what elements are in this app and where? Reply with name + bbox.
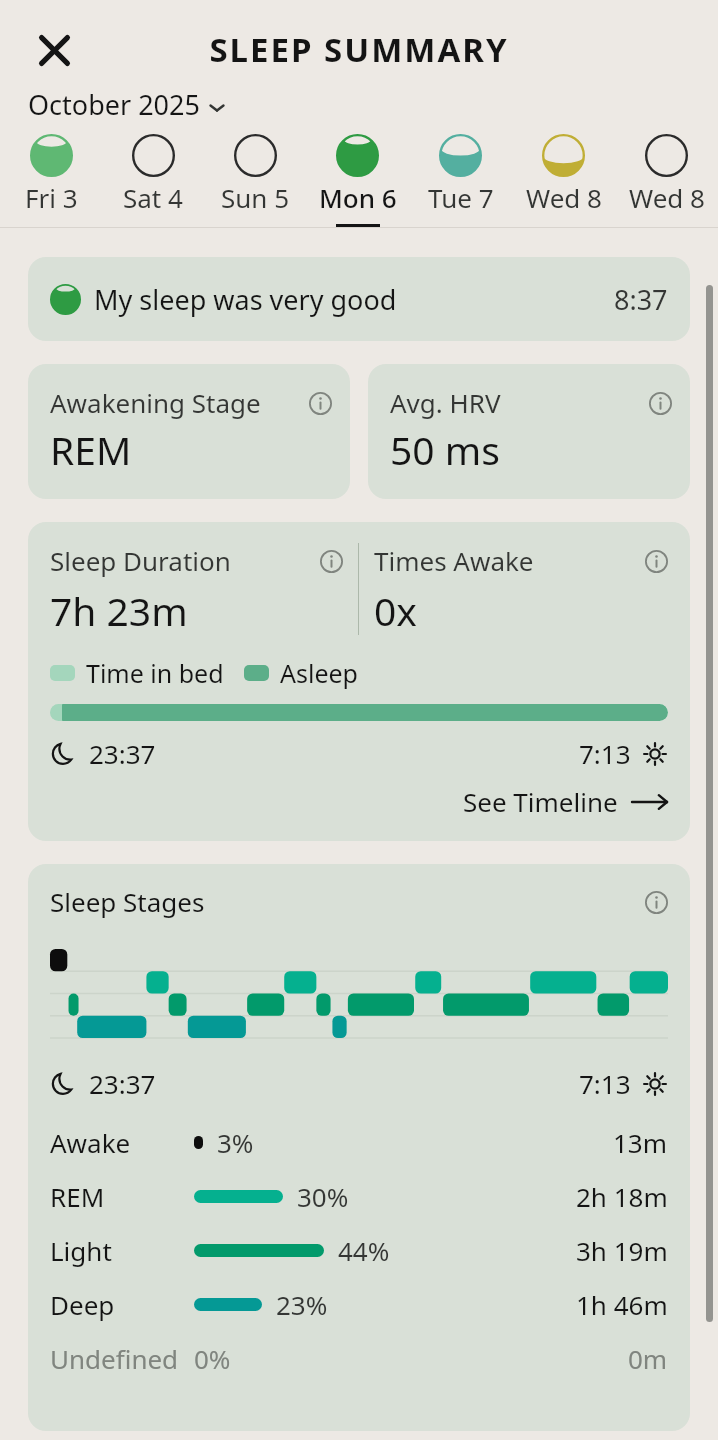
staticText: Wed 8	[629, 180, 705, 215]
staticText: Awakening Stage	[50, 385, 261, 420]
button[interactable]: Info	[644, 890, 668, 914]
button[interactable]: Tue 7	[409, 134, 512, 228]
staticText: REM	[50, 1179, 105, 1214]
staticText: Tue 7	[428, 180, 494, 215]
button[interactable]: See Timeline	[50, 784, 668, 819]
staticText: Undefined	[50, 1341, 179, 1376]
button[interactable]: Info	[308, 391, 332, 415]
button[interactable]: Mon 6	[306, 134, 409, 228]
staticText: 7h 23m	[50, 584, 188, 637]
staticText: 7:13	[579, 1066, 631, 1101]
staticText: 0%	[194, 1341, 231, 1376]
staticText: Fri 3	[25, 180, 78, 215]
staticText: 2h 18m	[576, 1179, 668, 1214]
button[interactable]: Info	[319, 549, 343, 573]
staticText: 3h 19m	[576, 1233, 668, 1268]
staticText: See Timeline	[463, 784, 618, 819]
staticText: 1h 46m	[576, 1287, 668, 1322]
button[interactable]: Avg. HRV	[368, 364, 690, 499]
staticText: 13m	[613, 1125, 668, 1160]
staticText: 3%	[217, 1125, 254, 1160]
button[interactable]: Sat 4	[102, 134, 204, 228]
button[interactable]: October 2025	[28, 86, 225, 123]
button[interactable]: Wed 8	[615, 134, 718, 228]
button[interactable]: Fri 3	[0, 134, 102, 228]
staticText: 30%	[297, 1179, 349, 1214]
staticText: Sat 4	[123, 180, 183, 215]
button[interactable]: My sleep was very good	[28, 257, 690, 341]
staticText: Deep	[50, 1287, 115, 1322]
staticText: Sleep Duration	[50, 543, 231, 578]
staticText: 7:13	[579, 736, 631, 771]
staticText: 50 ms	[390, 423, 500, 476]
staticText: Mon 6	[319, 180, 397, 215]
staticText: My sleep was very good	[94, 281, 397, 318]
staticText: 23:37	[89, 736, 156, 771]
staticText: 0m	[628, 1341, 668, 1376]
staticText: October 2025	[28, 86, 200, 123]
staticText: Sleep Stages	[50, 884, 205, 919]
staticText: SLEEP SUMMARY	[0, 27, 718, 72]
staticText: Avg. HRV	[390, 385, 501, 420]
button[interactable]: Close	[24, 20, 84, 80]
staticText: 23%	[276, 1287, 328, 1322]
staticText: REM	[50, 423, 132, 476]
button[interactable]: Awakening Stage	[28, 364, 350, 499]
staticText: 23:37	[89, 1066, 156, 1101]
button[interactable]: Wed 8	[512, 134, 615, 228]
button[interactable]: Info	[644, 549, 668, 573]
staticText: Asleep	[280, 656, 358, 690]
staticText: 8:37	[614, 281, 668, 318]
staticText: 0x	[374, 584, 417, 637]
staticText: Time in bed	[86, 656, 224, 690]
staticText: Times Awake	[374, 543, 534, 578]
staticText: 44%	[338, 1233, 390, 1268]
staticText: Awake	[50, 1125, 131, 1160]
staticText: Light	[50, 1233, 112, 1268]
button[interactable]: Info	[648, 391, 672, 415]
other: See Timeline	[632, 792, 668, 812]
button[interactable]: Sun 5	[204, 134, 306, 228]
staticText: Sun 5	[221, 180, 290, 215]
staticText: Wed 8	[526, 180, 602, 215]
